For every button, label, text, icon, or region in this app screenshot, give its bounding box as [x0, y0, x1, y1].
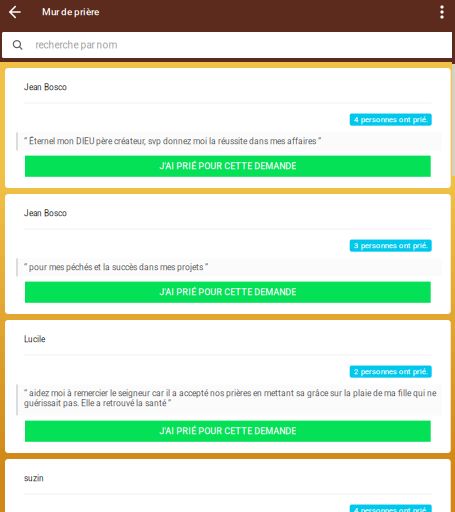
button[interactable]: 3 personnes ont prié. [350, 239, 432, 252]
button[interactable]: Search by name [0, 32, 455, 58]
staticText: J'AI PRIÉ POUR CETTE DEMANDE [159, 161, 296, 171]
button[interactable]: J'AI PRIÉ POUR CETTE DEMANDE [25, 156, 431, 177]
staticText: Jean Bosco [24, 209, 67, 218]
staticText: Mur de prière [42, 6, 99, 18]
button[interactable]: J'AI PRIÉ POUR CETTE DEMANDE [25, 421, 431, 442]
staticText: “ aidez moi à remercier le seigneur car … [24, 388, 436, 408]
staticText: Jean Bosco [24, 83, 67, 92]
staticText: 2 personnes ont prié. [354, 367, 428, 376]
staticText: 4 personnes ont prié. [354, 506, 428, 512]
button[interactable]: 4 personnes ont prié. [350, 113, 432, 126]
button[interactable]: 4 personnes ont prié. [350, 504, 432, 512]
button[interactable]: 2 personnes ont prié. [350, 365, 432, 378]
staticText: J'AI PRIÉ POUR CETTE DEMANDE [159, 426, 296, 436]
staticText: Lucile [24, 335, 45, 344]
button[interactable]: Back [0, 0, 42, 24]
staticText: J'AI PRIÉ POUR CETTE DEMANDE [159, 287, 296, 297]
button[interactable]: J'AI PRIÉ POUR CETTE DEMANDE [25, 282, 431, 303]
staticText: suzin [24, 474, 44, 483]
button[interactable]: More options [430, 0, 455, 24]
staticText: “ pour mes péchés et la succès dans mes … [24, 262, 208, 272]
staticText: 4 personnes ont prié. [354, 115, 428, 124]
staticText: “ Éternel mon DIEU père créateur, svp do… [24, 136, 321, 146]
staticText: 3 personnes ont prié. [354, 241, 428, 250]
staticText: recherche par nom [35, 39, 117, 51]
